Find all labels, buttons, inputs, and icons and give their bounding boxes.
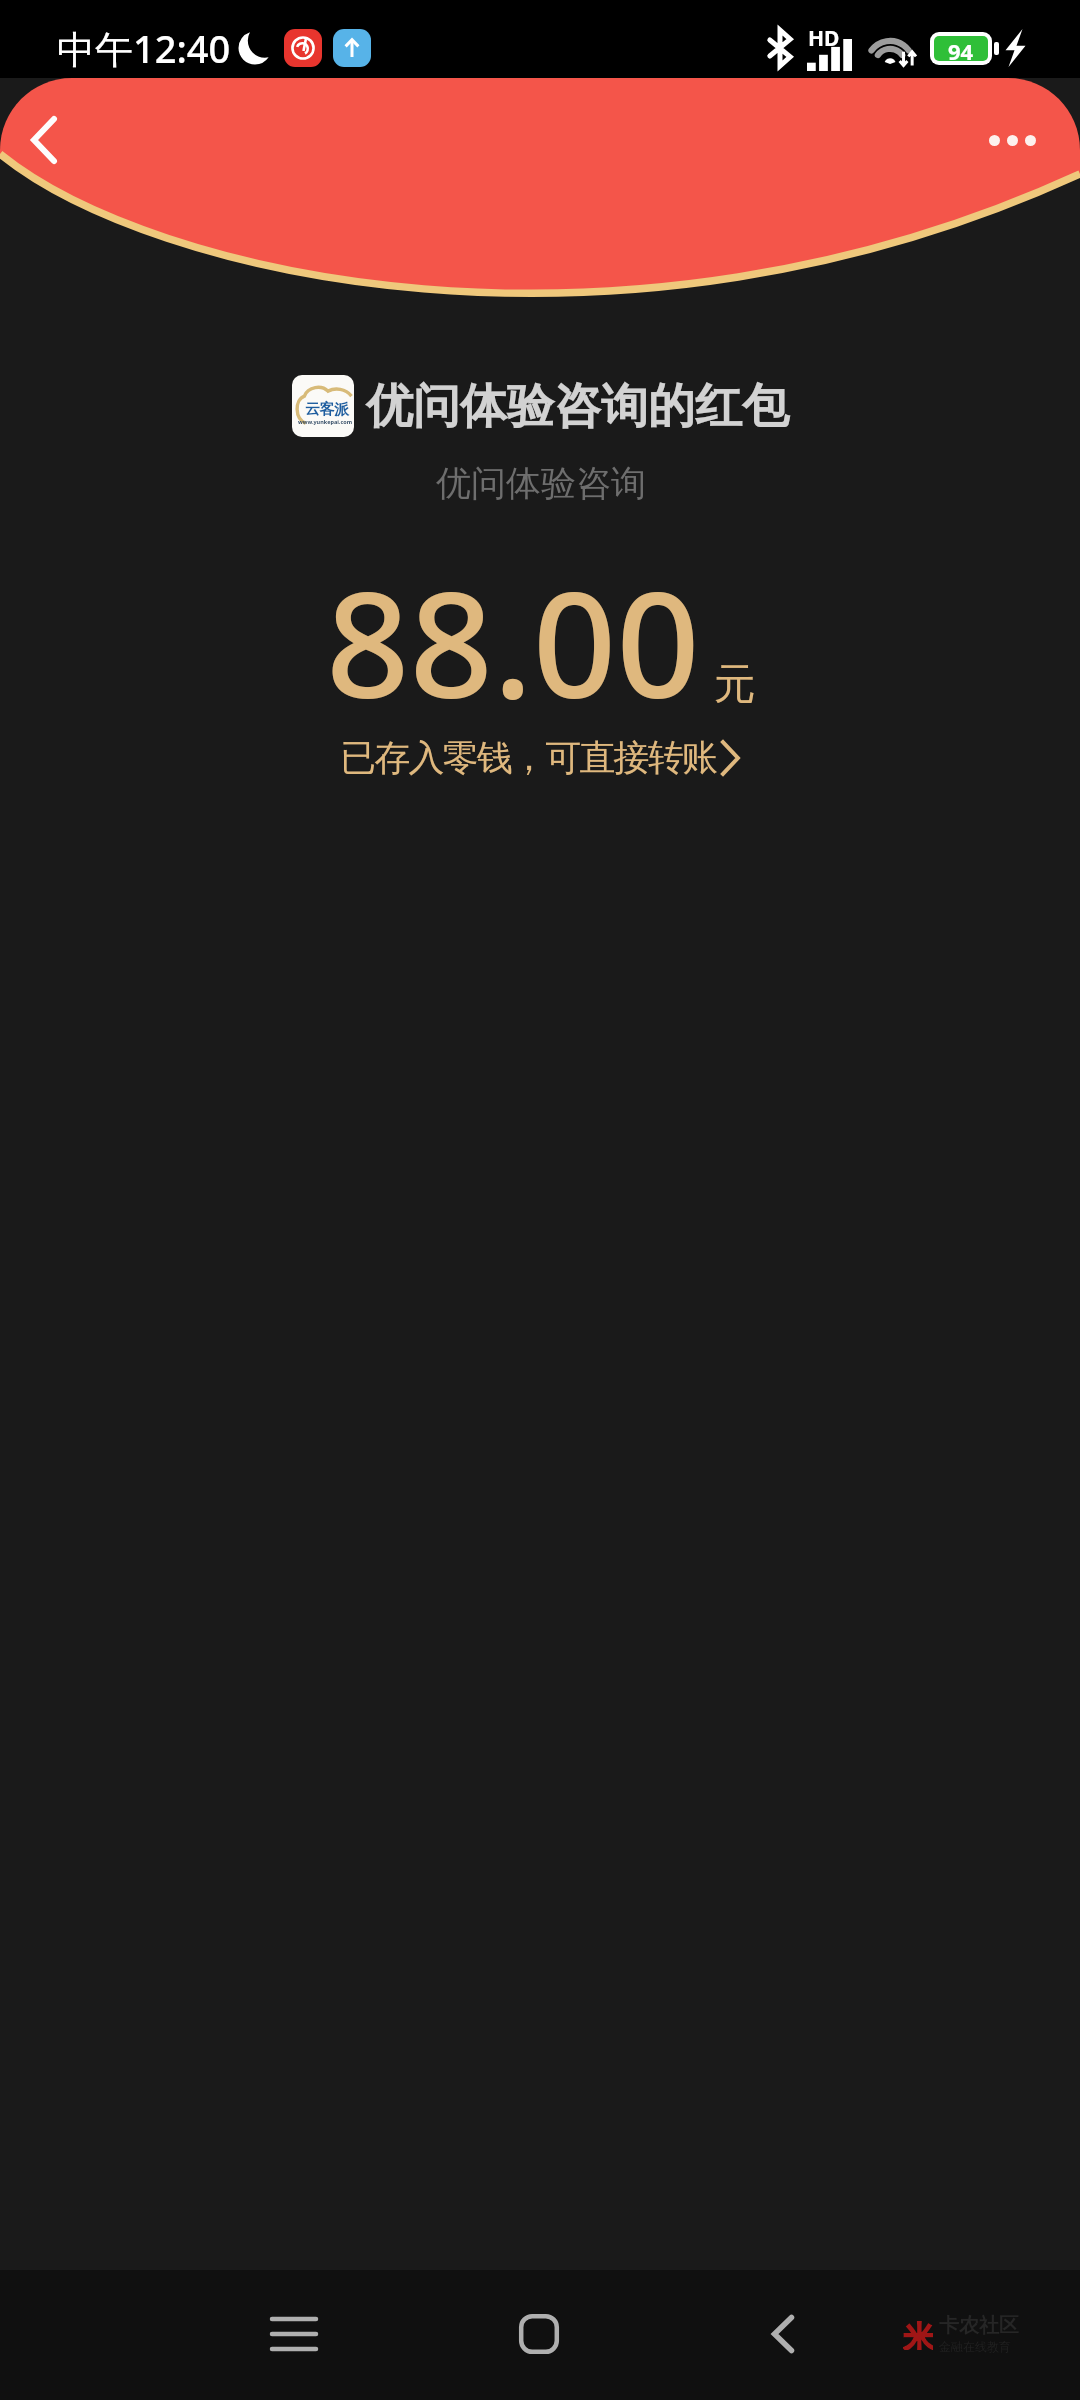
staticText: 94 (948, 36, 974, 61)
staticText: 已存入零钱，可直接转账 (340, 735, 717, 780)
staticText: 优问体验咨询的红包 (366, 377, 789, 436)
button[interactable]: Home (479, 2274, 599, 2394)
button[interactable]: 已存入零钱，可直接转账 (340, 735, 741, 780)
button[interactable]: Menu (234, 2274, 354, 2394)
button[interactable]: Back (8, 104, 80, 176)
staticText: 金融在线教育 (939, 2339, 1011, 2354)
staticText: 卡农社区 (939, 2313, 1019, 2338)
button[interactable]: Back (723, 2274, 843, 2394)
staticText: 优问体验咨询 (436, 461, 646, 505)
staticText: 元 (714, 658, 756, 711)
staticText: 88.00 (326, 542, 700, 741)
staticText: HD (808, 24, 840, 53)
button[interactable]: More options (976, 104, 1048, 176)
staticText: 米 (903, 2318, 933, 2350)
staticText: www.yunkepai.com (298, 418, 353, 425)
staticText: 云客派 (305, 400, 349, 419)
staticText: 中午12:40 (57, 22, 231, 74)
